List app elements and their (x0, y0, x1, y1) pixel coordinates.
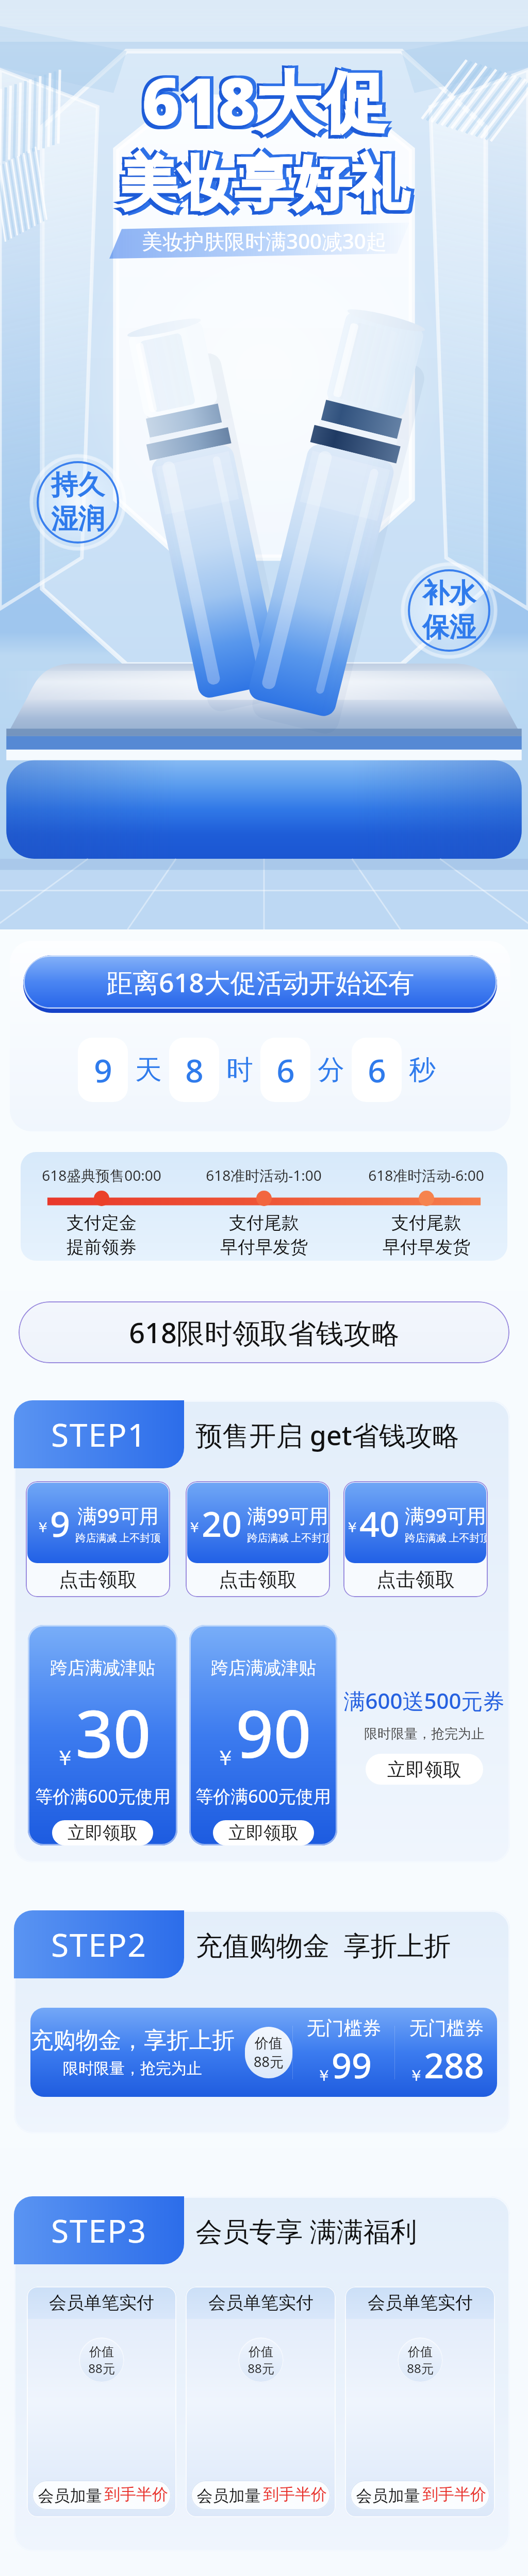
staticText: 分 (318, 1053, 344, 1087)
staticText: 到手半价 (263, 2484, 327, 2504)
staticText: 跨店满减津贴 (50, 1657, 155, 1679)
staticText: 点击领取 (376, 1567, 455, 1592)
staticText: 618限时领取省钱攻略 (129, 1313, 400, 1351)
staticText: 限时限量，抢完为止 (63, 2059, 202, 2078)
button[interactable]: ￥ (186, 1481, 330, 1597)
staticText: 秒 (409, 1053, 436, 1087)
staticText: 618大促 (145, 53, 390, 142)
staticText: 美妆享好礼 (117, 151, 406, 224)
staticText: 美妆享好礼 (120, 147, 408, 220)
staticText: 618大促 (139, 53, 384, 142)
staticText: 会员专享 满满福利 (195, 2212, 417, 2249)
staticText: 40 (359, 1499, 400, 1547)
staticText: 618大促 (145, 59, 390, 148)
staticText: 到手半价 (104, 2484, 168, 2504)
staticText: 跨店满减 上不封顶 (405, 1531, 486, 1545)
staticText: 满99可用 (247, 1502, 328, 1529)
staticText: 618大促 (142, 56, 386, 144)
staticText: 88元 (407, 2360, 434, 2377)
staticText: 天 (135, 1053, 162, 1087)
staticText: 湿润 (51, 502, 105, 536)
staticText: 支付尾款 (391, 1212, 461, 1234)
staticText: 点击领取 (59, 1567, 137, 1592)
staticText: ￥ (36, 1518, 50, 1536)
staticText: 会员单笔实付 (49, 2292, 154, 2314)
staticText: STEP2 (51, 1923, 147, 1966)
staticText: ￥ (345, 1518, 359, 1536)
staticText: 满99可用 (77, 1502, 159, 1529)
staticText: 满99可用 (405, 1502, 486, 1529)
staticText: 美妆护肤限时满300减30起 (142, 227, 387, 255)
staticText: 满600送500元券 (343, 1686, 505, 1715)
staticText: 提前领券 (67, 1236, 137, 1258)
staticText: 充值购物金 享折上折 (195, 1926, 451, 1963)
staticText: 30 (75, 1687, 151, 1777)
button[interactable]: 跨店满减津贴 (189, 1625, 337, 1845)
button[interactable]: 无门槛券 (395, 2008, 497, 2097)
button[interactable]: 会员单笔实付 (186, 2286, 336, 2517)
staticText: 立即领取 (228, 1822, 299, 1844)
button[interactable]: 跨店满减津贴 (28, 1625, 177, 1845)
staticText: 跨店满减津贴 (211, 1657, 316, 1679)
button[interactable]: 立即领取 (366, 1754, 483, 1785)
staticText: 点击领取 (219, 1567, 297, 1592)
staticText: 会员单笔实付 (208, 2292, 313, 2314)
staticText: 99 (332, 2041, 372, 2089)
staticText: 88元 (254, 2052, 284, 2071)
staticText: 支付定金 (67, 1212, 137, 1234)
staticText: 6 (368, 1048, 386, 1092)
button[interactable]: 无门槛券 (293, 2008, 394, 2097)
staticText: 价值 (408, 2344, 433, 2360)
staticText: 6 (276, 1048, 295, 1092)
staticText: 20 (202, 1499, 242, 1547)
button[interactable]: 会员单笔实付 (27, 2286, 176, 2517)
staticText: 价值 (255, 2035, 283, 2052)
staticText: 限时限量，抢完为止 (364, 1725, 485, 1742)
staticText: ￥ (215, 1745, 236, 1771)
staticText: ￥ (187, 1518, 202, 1536)
staticText: 618准时活动-6:00 (368, 1165, 484, 1185)
staticText: ￥ (316, 2066, 332, 2086)
button[interactable]: 618限时领取省钱攻略 (19, 1301, 509, 1363)
staticText: 早付早发货 (220, 1236, 308, 1258)
staticText: 88元 (88, 2360, 115, 2377)
button[interactable]: ￥ (343, 1481, 488, 1597)
staticText: 会员单笔实付 (368, 2292, 473, 2314)
button[interactable]: ￥ (26, 1481, 170, 1597)
staticText: 288 (424, 2041, 484, 2089)
staticText: 充购物金，享折上折 (30, 2026, 235, 2055)
staticText: 补水 (422, 577, 476, 611)
staticText: 支付尾款 (229, 1212, 299, 1234)
staticText: 跨店满减 上不封顶 (247, 1531, 328, 1545)
staticText: STEP1 (51, 1413, 147, 1456)
staticText: 会员加量 (194, 2484, 263, 2506)
button[interactable]: 会员单笔实付 (345, 2286, 495, 2517)
staticText: 90 (236, 1687, 311, 1777)
staticText: STEP3 (51, 2209, 147, 2252)
staticText: 立即领取 (68, 1822, 138, 1844)
staticText: 9 (50, 1499, 70, 1547)
staticText: 距离618大促活动开始还有 (106, 964, 415, 1000)
staticText: 到手半价 (422, 2484, 486, 2504)
staticText: 会员加量 (354, 2484, 422, 2506)
staticText: 立即领取 (387, 1758, 461, 1781)
staticText: 618盛典预售00:00 (42, 1165, 161, 1185)
staticText: 等价满600元使用 (35, 1784, 171, 1808)
staticText: 618大促 (139, 59, 384, 148)
staticText: 等价满600元使用 (195, 1784, 331, 1808)
staticText: 美妆享好礼 (123, 145, 412, 217)
staticText: 无门槛券 (307, 2016, 381, 2040)
staticText: 预售开启 get省钱攻略 (195, 1416, 459, 1453)
button[interactable]: 距离618大促活动开始还有 (23, 955, 497, 1009)
staticText: 618准时活动-1:00 (206, 1165, 322, 1185)
staticText: ￥ (408, 2066, 424, 2086)
staticText: 无门槛券 (409, 2016, 484, 2040)
staticText: 美妆享好礼 (123, 151, 412, 224)
staticText: ￥ (55, 1745, 75, 1771)
staticText: 持久 (51, 468, 105, 502)
button[interactable]: 充购物金，享折上折 (30, 2008, 292, 2097)
staticText: 8 (185, 1048, 204, 1092)
staticText: 88元 (247, 2360, 274, 2377)
staticText: 美妆享好礼 (117, 145, 406, 217)
staticText: 保湿 (422, 611, 476, 645)
